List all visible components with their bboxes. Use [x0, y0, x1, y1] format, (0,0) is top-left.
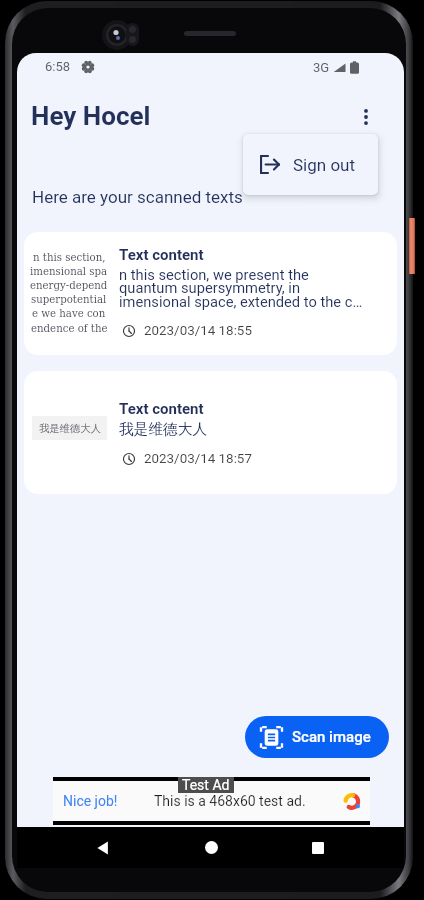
staticText: e we have con: [32, 308, 106, 320]
button[interactable]: n this section,: [24, 232, 397, 355]
staticText: 我是维德大人: [119, 420, 367, 439]
staticText: Text content: [119, 400, 204, 418]
staticText: endence of the: [31, 323, 108, 335]
staticText: Here are your scanned texts: [32, 187, 243, 207]
staticText: Test Ad: [182, 777, 230, 793]
button[interactable]: More options: [351, 102, 381, 132]
button[interactable]: Recent apps: [296, 827, 340, 868]
button[interactable]: 我是维德大人: [24, 371, 397, 494]
button[interactable]: Home: [189, 827, 233, 868]
staticText: n this section, we present the quantum s…: [119, 266, 367, 310]
button[interactable]: Sign out: [243, 134, 378, 195]
button[interactable]: Scan image: [245, 716, 389, 758]
staticText: Hey Hocel: [31, 101, 151, 131]
staticText: 2023/03/14 18:55: [144, 323, 252, 339]
staticText: energy-depend: [30, 280, 108, 292]
button[interactable]: Nice job!: [53, 777, 370, 825]
staticText: This is a 468x60 test ad.: [154, 793, 306, 809]
staticText: superpotential: [31, 294, 107, 306]
button[interactable]: Back: [81, 827, 125, 868]
staticText: Scan image: [292, 728, 371, 746]
staticText: 6:58: [45, 59, 71, 74]
staticText: 2023/03/14 18:57: [144, 451, 252, 467]
staticText: imensional spa: [30, 266, 108, 278]
staticText: Nice job!: [63, 793, 118, 809]
staticText: 我是维德大人: [39, 422, 101, 435]
staticText: Sign out: [293, 155, 356, 175]
staticText: Text content: [119, 246, 204, 264]
staticText: 3G: [313, 60, 330, 75]
staticText: n this section,: [33, 252, 106, 264]
